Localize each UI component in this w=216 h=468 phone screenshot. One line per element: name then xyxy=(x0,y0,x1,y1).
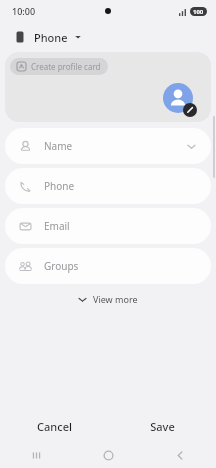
staticText: Save xyxy=(150,419,175,434)
staticText: Name xyxy=(44,139,73,153)
staticText: 10:00 xyxy=(12,5,36,17)
staticText: Cancel xyxy=(37,419,72,434)
button[interactable]: Create profile card xyxy=(10,58,108,75)
button[interactable]: Email xyxy=(5,208,211,244)
staticText: Email xyxy=(44,219,70,233)
button[interactable]: Recents xyxy=(0,442,72,468)
button[interactable]: Edit profile photo xyxy=(163,83,197,117)
button[interactable]: Back xyxy=(144,442,216,468)
staticText: Create profile card xyxy=(31,61,101,72)
button[interactable]: Home xyxy=(72,442,144,468)
button[interactable]: Groups xyxy=(5,248,211,284)
button[interactable]: Phone xyxy=(5,168,211,204)
button[interactable]: Save xyxy=(108,410,216,442)
staticText: View more xyxy=(93,293,138,305)
button[interactable]: Name xyxy=(5,128,211,164)
button[interactable]: Cancel xyxy=(0,410,108,442)
staticText: 100 xyxy=(193,8,204,16)
button[interactable]: Phone xyxy=(0,22,216,52)
staticText: Phone xyxy=(44,179,75,193)
staticText: Groups xyxy=(44,259,79,273)
button[interactable]: View more xyxy=(70,289,146,309)
staticText: Phone xyxy=(34,30,68,45)
